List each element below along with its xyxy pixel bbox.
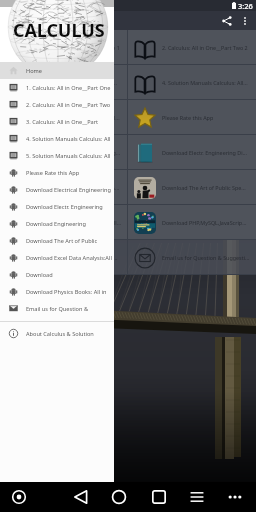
button[interactable]: Download Electr. Engineering [0,198,114,215]
button[interactable]: Email us for Question & [0,300,114,317]
button[interactable]: Download The Art of Public Spe... [128,170,256,205]
button[interactable]: Download The Art of Public [0,232,114,249]
staticText: 1. Calculus: All in One__Part One 1 [34,44,120,51]
staticText: 5. Solution Manuals Calculus: All... [34,114,120,121]
staticText: 3. Calculus: All in One__Part Thr... [34,79,117,86]
button[interactable]: Download Electrical Engineering... [0,135,127,170]
staticText: Download Excel Data Analysis:All... [34,219,122,226]
staticText: Download Engineering Books: A... [34,184,120,191]
staticText: Please Rate this App [162,114,214,121]
button[interactable]: 1. Calculus: All in One__Part One [0,79,114,96]
staticText: 1. Calculus: All in One__Part One [26,84,111,92]
button[interactable]: Download [0,266,114,283]
button[interactable]: 3. Calculus: All in One__Part Thr... [0,65,127,100]
button[interactable]: 4. Solution Manuals Calculus: All... [128,65,256,100]
staticText: 2. Calculus: All in One__Part Two 2 [162,44,248,51]
button[interactable]: Assistant [6,482,32,512]
staticText: Download The Art of Public [26,237,98,245]
staticText: Download Electr. Engineering [26,203,103,211]
staticText: Email us for Question & [26,305,88,313]
button[interactable]: Menu [184,482,210,512]
staticText: Download The Art of Public Spe... [162,184,246,191]
button[interactable]: More [222,482,248,512]
staticText: 3. Calculus: All in One__Part [26,118,99,126]
button[interactable]: Download Physics Books: All in ... [0,240,127,275]
button[interactable]: About Calculus & Solution [0,325,114,342]
button[interactable]: Download Excel Data Analysis:All [0,249,114,266]
staticText: Download [26,271,53,279]
button[interactable]: 1. Calculus: All in One__Part One 1 [0,30,127,65]
staticText: Download Physics Books: All in ... [34,254,118,261]
button[interactable]: Download Physics Books: All in [0,283,114,300]
staticText: Download Electrical Engineering... [34,149,121,156]
staticText: 4. Solution Manuals Calculus: All [26,135,111,143]
staticText: 3:26 [238,1,253,11]
staticText: Download Electr. Engineering Di... [162,149,247,156]
button[interactable]: 4. Solution Manuals Calculus: All [0,130,114,147]
staticText: 2. Calculus: All in One__Part Two [26,101,111,109]
button[interactable]: Recent apps [146,482,172,512]
button[interactable]: 2. Calculus: All in One__Part Two 2 [128,30,256,65]
button[interactable]: 5. Solution Manuals Calculus: All [0,147,114,164]
staticText: About Calculus & Solution [26,330,94,338]
staticText: 4. Solution Manuals Calculus: All... [162,79,248,86]
staticText: Download Physics Books: All in [26,288,107,296]
staticText: Email us for Question & Suggesti... [162,254,250,261]
button[interactable]: More options [236,12,254,30]
button[interactable]: Download Engineering Books: A... [0,170,127,205]
button[interactable]: Download Electrical Engineering [0,181,114,198]
button[interactable]: Home [106,482,132,512]
staticText: Download Engineering [26,220,86,228]
button[interactable]: Please Rate this App [128,100,256,135]
staticText: Download Excel Data Analysis:All [26,254,112,262]
button[interactable]: 3. Calculus: All in One__Part [0,113,114,130]
button[interactable]: Download PHP,MySQL,JavaScrip... [128,205,256,240]
staticText: Download PHP,MySQL,JavaScrip... [162,219,247,226]
button[interactable]: Download Electr. Engineering Di... [128,135,256,170]
staticText: Please Rate this App [26,169,80,177]
staticText: CALCULUS [13,18,105,43]
button[interactable]: Please Rate this App [0,164,114,181]
button[interactable]: Share [218,12,236,30]
button[interactable]: Download Excel Data Analysis:All... [0,205,127,240]
button[interactable]: Email us for Question & Suggesti... [128,240,256,275]
staticText: 5. Solution Manuals Calculus: All [26,152,111,160]
staticText: Download Electrical Engineering [26,186,111,194]
button[interactable]: Home [0,62,114,79]
button[interactable]: Back [68,482,94,512]
button[interactable]: 5. Solution Manuals Calculus: All... [0,100,127,135]
staticText: Home [26,67,42,75]
button[interactable]: 2. Calculus: All in One__Part Two [0,96,114,113]
button[interactable]: Download Engineering [0,215,114,232]
